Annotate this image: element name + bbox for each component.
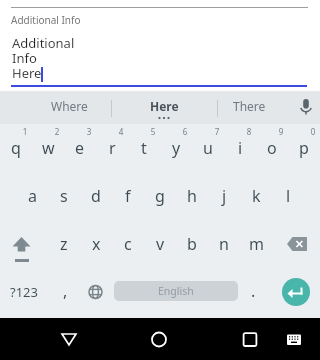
button[interactable] bbox=[0, 318, 106, 360]
button[interactable]: u bbox=[193, 134, 223, 162]
button[interactable]: . bbox=[238, 277, 268, 305]
button[interactable] bbox=[106, 318, 213, 360]
staticText: m bbox=[249, 233, 264, 255]
staticText: 4 bbox=[115, 126, 127, 137]
button[interactable]: Here bbox=[119, 93, 209, 119]
staticText: l bbox=[286, 185, 291, 207]
button[interactable]: k bbox=[241, 182, 271, 210]
button[interactable]: a bbox=[17, 182, 47, 210]
button[interactable]: c bbox=[113, 230, 143, 258]
button[interactable]: h bbox=[177, 182, 207, 210]
staticText: There bbox=[233, 98, 266, 114]
button[interactable]: o bbox=[257, 134, 287, 162]
staticText: Additional Info Here bbox=[12, 34, 75, 82]
staticText: z bbox=[60, 233, 68, 255]
staticText: p bbox=[299, 137, 309, 159]
button[interactable] bbox=[213, 318, 320, 360]
button[interactable]: s bbox=[49, 182, 79, 210]
staticText: t bbox=[141, 137, 147, 159]
button[interactable]: x bbox=[81, 230, 111, 258]
staticText: k bbox=[252, 185, 261, 207]
button[interactable]: d bbox=[81, 182, 111, 210]
button[interactable]: e bbox=[65, 134, 95, 162]
button[interactable]: i bbox=[225, 134, 255, 162]
button[interactable]: t bbox=[129, 134, 159, 162]
staticText: n bbox=[219, 233, 229, 255]
button[interactable]: , bbox=[50, 277, 80, 305]
button[interactable] bbox=[8, 232, 36, 260]
staticText: c bbox=[124, 233, 132, 255]
button[interactable]: r bbox=[97, 134, 127, 162]
button[interactable]: v bbox=[145, 230, 175, 258]
staticText: 8 bbox=[243, 126, 255, 137]
button[interactable]: p bbox=[289, 134, 319, 162]
button[interactable]: l bbox=[273, 182, 303, 210]
staticText: 3 bbox=[83, 126, 95, 137]
staticText: a bbox=[28, 185, 37, 207]
staticText: , bbox=[63, 280, 68, 302]
staticText: x bbox=[92, 233, 101, 255]
button[interactable]: ?123 bbox=[9, 278, 39, 306]
button[interactable]: z bbox=[49, 230, 79, 258]
button[interactable]: y bbox=[161, 134, 191, 162]
staticText: 6 bbox=[179, 126, 191, 137]
staticText: j bbox=[222, 185, 227, 207]
button[interactable]: b bbox=[177, 230, 207, 258]
staticText: g bbox=[155, 185, 165, 207]
staticText: 1 bbox=[19, 126, 31, 137]
staticText: 7 bbox=[211, 126, 223, 137]
button[interactable] bbox=[55, 331, 83, 357]
staticText: Where bbox=[51, 98, 88, 114]
staticText: e bbox=[75, 137, 85, 159]
button[interactable]: n bbox=[209, 230, 239, 258]
button[interactable]: There bbox=[204, 93, 294, 119]
button[interactable]: Where bbox=[24, 93, 114, 119]
staticText: Additional Info bbox=[11, 13, 81, 27]
button[interactable]: g bbox=[145, 182, 175, 210]
button[interactable]: English bbox=[114, 281, 238, 301]
staticText: b bbox=[187, 233, 197, 255]
staticText: y bbox=[172, 137, 181, 159]
staticText: u bbox=[203, 137, 213, 159]
staticText: English bbox=[158, 284, 194, 298]
staticText: d bbox=[91, 185, 101, 207]
staticText: 5 bbox=[147, 126, 159, 137]
button[interactable]: w bbox=[33, 134, 63, 162]
staticText: s bbox=[60, 185, 68, 207]
button[interactable]: f bbox=[113, 182, 143, 210]
staticText: h bbox=[187, 185, 197, 207]
button[interactable]: j bbox=[209, 182, 239, 210]
button[interactable] bbox=[282, 278, 310, 306]
staticText: 0 bbox=[307, 126, 319, 137]
staticText: i bbox=[238, 137, 243, 159]
button[interactable]: m bbox=[241, 230, 271, 258]
button[interactable]: q bbox=[1, 134, 31, 162]
staticText: v bbox=[156, 233, 165, 255]
staticText: q bbox=[11, 137, 21, 159]
staticText: f bbox=[125, 185, 131, 207]
staticText: 2 bbox=[51, 126, 63, 137]
staticText: ?123 bbox=[10, 283, 38, 301]
staticText: w bbox=[42, 137, 55, 159]
staticText: . bbox=[251, 280, 256, 302]
staticText: 9 bbox=[275, 126, 287, 137]
button[interactable] bbox=[283, 232, 313, 260]
staticText: Here bbox=[150, 98, 179, 114]
button[interactable] bbox=[88, 284, 104, 300]
staticText: o bbox=[267, 137, 277, 159]
staticText: r bbox=[109, 137, 116, 159]
